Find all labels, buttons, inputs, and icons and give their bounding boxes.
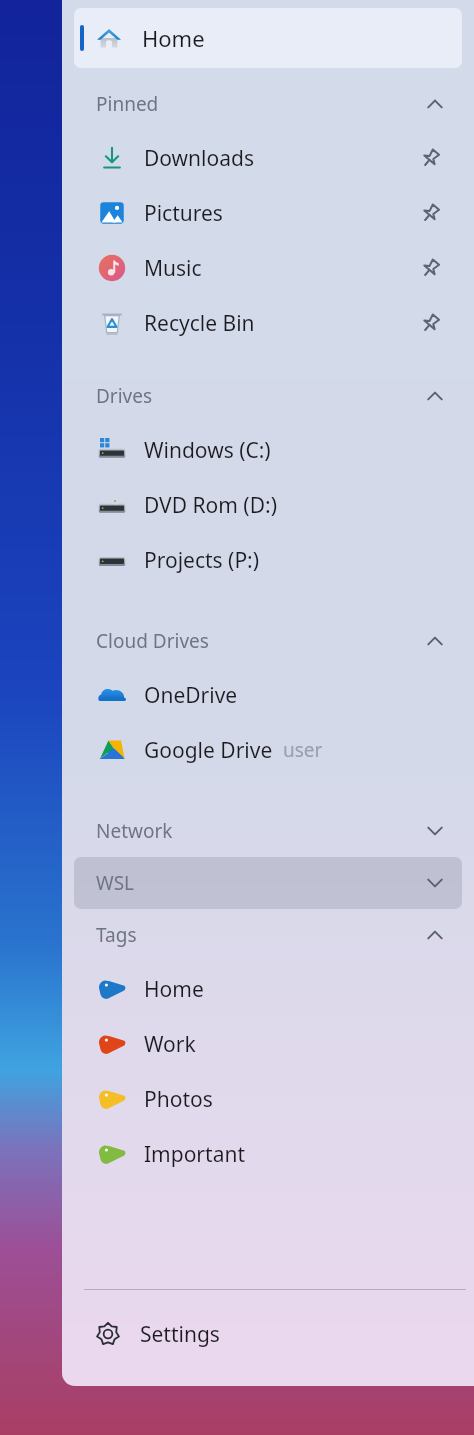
button[interactable]: Home: [74, 8, 462, 68]
staticText: Projects (P:): [144, 546, 260, 575]
staticText: Home: [144, 975, 204, 1004]
staticText: Pinned: [96, 91, 159, 117]
button[interactable]: Pinned: [74, 78, 462, 130]
button[interactable]: Settings: [62, 1290, 474, 1378]
staticText: Work: [144, 1030, 196, 1059]
staticText: Important: [144, 1140, 245, 1169]
staticText: Tags: [96, 922, 137, 948]
staticText: user: [283, 737, 323, 763]
staticText: Pictures: [144, 199, 223, 228]
staticText: WSL: [96, 870, 135, 896]
button[interactable]: Tags: [74, 909, 462, 961]
button[interactable]: WSL: [74, 857, 462, 909]
button[interactable]: Home: [74, 961, 462, 1016]
staticText: OneDrive: [144, 681, 238, 710]
button[interactable]: Recycle Bin: [74, 295, 462, 350]
button[interactable]: Projects (P:): [74, 532, 462, 587]
button[interactable]: Downloads: [74, 130, 462, 185]
staticText: Photos: [144, 1085, 213, 1114]
button[interactable]: Photos: [74, 1071, 462, 1126]
other: Collapse: [422, 628, 448, 654]
button[interactable]: OneDrive: [74, 667, 462, 722]
other: Collapse: [422, 91, 448, 117]
button[interactable]: Important: [74, 1126, 462, 1181]
staticText: Music: [144, 254, 202, 283]
staticText: Home: [142, 23, 205, 53]
staticText: Windows (C:): [144, 436, 271, 465]
staticText: Network: [96, 818, 173, 844]
button[interactable]: Pictures: [74, 185, 462, 240]
staticText: DVD Rom (D:): [144, 491, 277, 520]
staticText: Downloads: [144, 144, 254, 173]
staticText: Settings: [140, 1320, 220, 1349]
staticText: Recycle Bin: [144, 309, 255, 338]
button[interactable]: Work: [74, 1016, 462, 1071]
staticText: Google Drive: [144, 736, 273, 765]
button[interactable]: Music: [74, 240, 462, 295]
button[interactable]: Network: [74, 805, 462, 857]
button[interactable]: Drives: [74, 370, 462, 422]
button[interactable]: Google Drive: [74, 722, 462, 777]
button[interactable]: Cloud Drives: [74, 615, 462, 667]
other: Expand: [422, 818, 448, 844]
button[interactable]: DVD Rom (D:): [74, 477, 462, 532]
staticText: Drives: [96, 383, 153, 409]
button[interactable]: Windows (C:): [74, 422, 462, 477]
other: Collapse: [422, 922, 448, 948]
other: Expand: [422, 870, 448, 896]
other: Collapse: [422, 383, 448, 409]
staticText: Cloud Drives: [96, 628, 209, 654]
